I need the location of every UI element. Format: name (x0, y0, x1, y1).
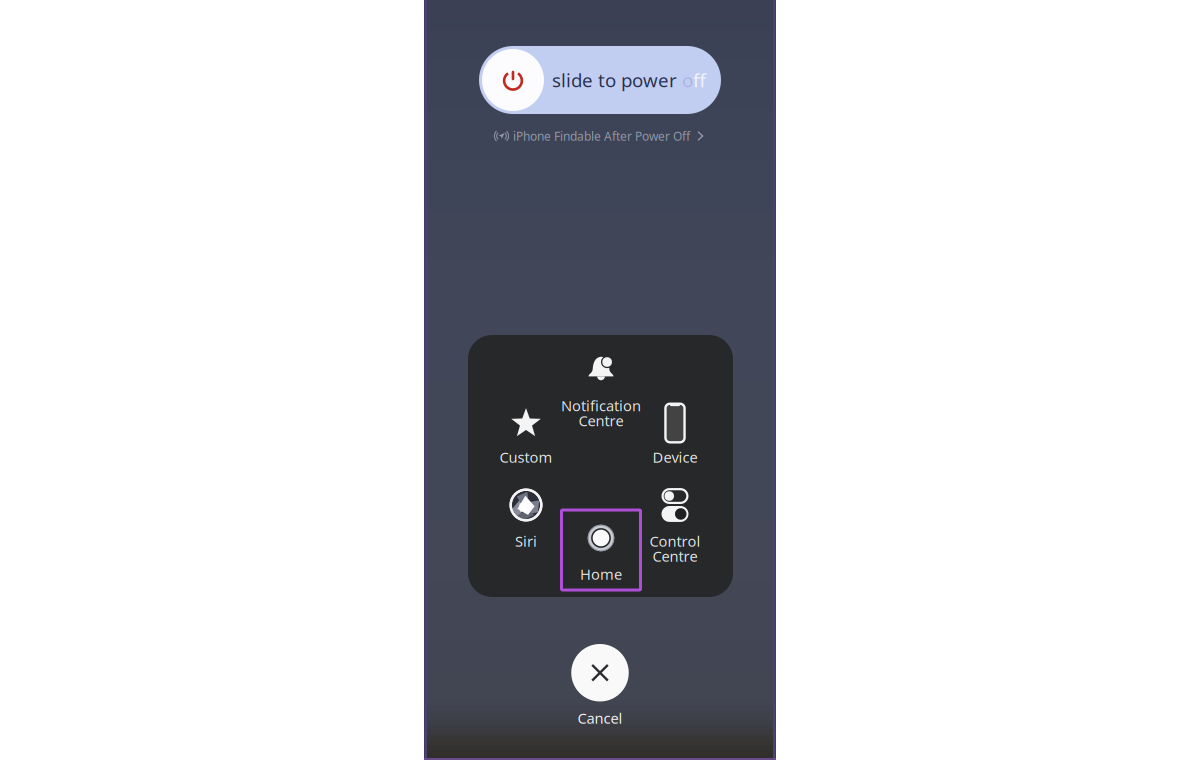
staticText: ff (693, 68, 706, 92)
button[interactable]: Device (635, 375, 715, 455)
button[interactable]: Cancel (560, 644, 640, 736)
staticText: Device (652, 447, 697, 467)
staticText: iPhone Findable After Power Off (513, 128, 690, 144)
staticText: Notification (561, 396, 641, 415)
staticText: Centre (652, 546, 697, 566)
staticText: Centre (578, 411, 623, 430)
button[interactable]: Custom (486, 375, 566, 455)
button[interactable]: Home (561, 510, 641, 590)
staticText: Home (580, 564, 622, 584)
staticText: o (677, 68, 693, 92)
staticText: slide to power (552, 68, 677, 92)
button[interactable]: iPhone Findable After Power Off (494, 127, 706, 145)
staticText: Siri (515, 531, 537, 551)
button[interactable]: Siri (486, 465, 566, 545)
staticText: Custom (499, 447, 552, 467)
button[interactable]: slide to power (479, 46, 721, 114)
staticText: Cancel (577, 708, 622, 728)
button[interactable]: Control (635, 465, 715, 545)
staticText: Control (649, 531, 700, 551)
button[interactable]: Notification (561, 335, 641, 415)
